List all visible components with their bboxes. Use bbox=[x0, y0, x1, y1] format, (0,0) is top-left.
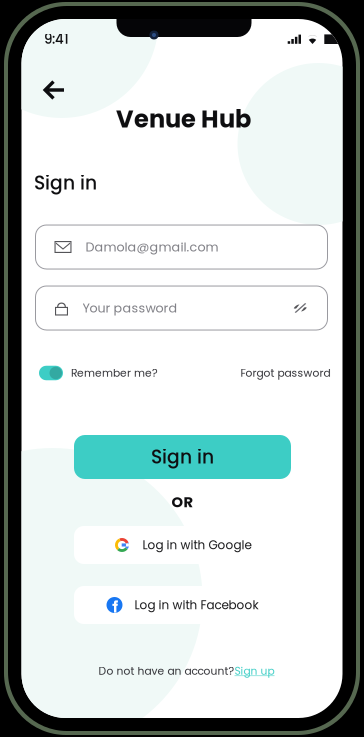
staticText: Sign in bbox=[34, 170, 97, 196]
button[interactable]: Log in with Google bbox=[74, 526, 291, 564]
staticText: Log in with Google bbox=[142, 537, 251, 553]
button[interactable]: Sign in bbox=[74, 435, 291, 479]
staticText: Log in with Facebook bbox=[134, 597, 258, 613]
button[interactable]: Do not have an account? bbox=[98, 663, 274, 678]
staticText: Sign up bbox=[234, 663, 274, 678]
button[interactable]: Back bbox=[35, 72, 71, 108]
staticText: Remember me? bbox=[71, 365, 158, 380]
staticText: Your password bbox=[82, 299, 177, 317]
button[interactable]: Log in with Facebook bbox=[74, 586, 291, 624]
staticText: Damola@gmail.com bbox=[85, 238, 218, 256]
button[interactable]: Remember me? bbox=[39, 365, 158, 380]
staticText: Forgot password bbox=[240, 365, 330, 380]
staticText: Venue Hub bbox=[116, 102, 251, 136]
staticText: Do not have an account? bbox=[98, 663, 234, 678]
staticText: 9:41 bbox=[44, 30, 69, 48]
staticText: OR bbox=[171, 492, 193, 512]
staticText: Sign in bbox=[151, 444, 214, 470]
button[interactable]: Forgot password bbox=[240, 365, 330, 380]
